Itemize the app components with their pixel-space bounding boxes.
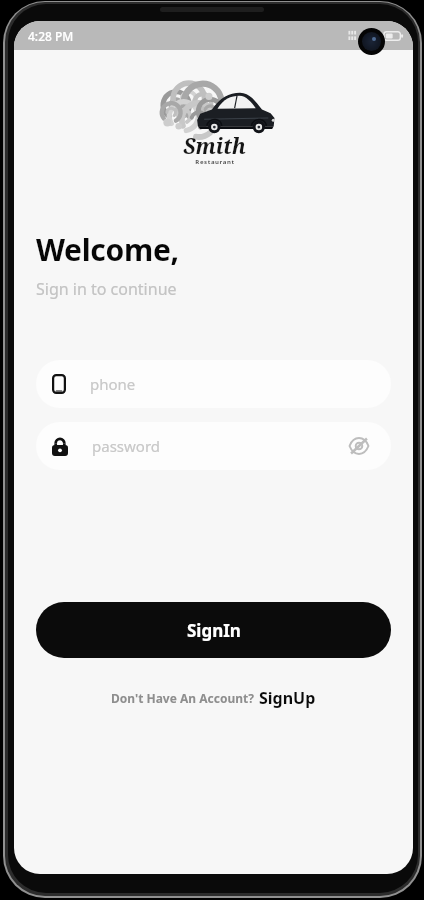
- button[interactable]: Phone number: [36, 360, 391, 408]
- button[interactable]: Don't Have An Account?: [107, 684, 320, 712]
- staticText: Smith: [183, 132, 246, 161]
- staticText: password: [92, 436, 160, 456]
- staticText: SignUp: [259, 687, 316, 709]
- button[interactable]: Show password: [345, 432, 373, 460]
- staticText: Restaurant: [195, 158, 235, 166]
- staticText: Welcome,: [36, 229, 179, 270]
- button[interactable]: SignIn: [36, 602, 391, 658]
- staticText: Don't Have An Account?: [111, 690, 254, 706]
- staticText: Sign in to continue: [36, 278, 177, 300]
- button[interactable]: Password: [36, 422, 391, 470]
- staticText: 4:28 PM: [28, 28, 74, 44]
- staticText: phone: [90, 374, 136, 394]
- other: Phone number: [52, 374, 66, 394]
- other: Password: [52, 437, 68, 456]
- staticText: SignIn: [187, 619, 241, 642]
